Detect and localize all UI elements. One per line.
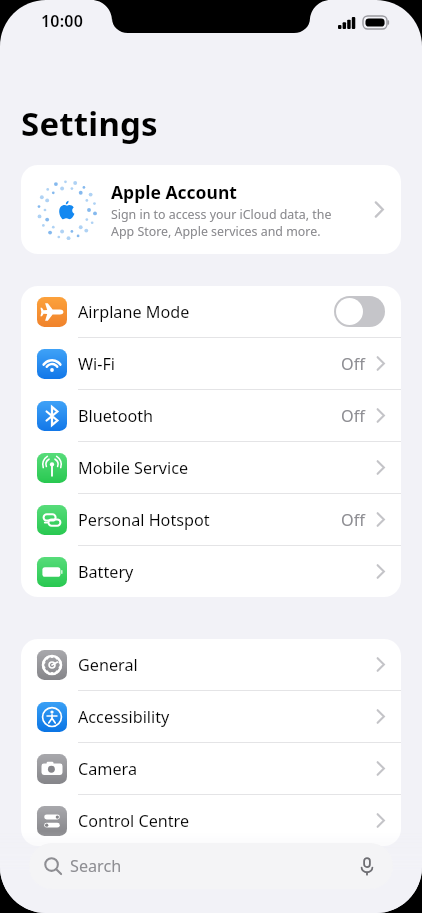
staticText: Personal Hotspot xyxy=(78,509,341,531)
staticText: Wi-Fi xyxy=(78,353,341,375)
staticText: General xyxy=(78,654,376,676)
staticText: Apple Account xyxy=(111,180,237,204)
button[interactable]: General xyxy=(21,639,401,690)
button[interactable]: Camera xyxy=(21,743,401,794)
button[interactable]: Personal Hotspot xyxy=(21,494,401,545)
staticText: Sign in to access your iCloud data, the … xyxy=(111,206,332,239)
staticText: Camera xyxy=(78,758,376,780)
staticText: Off xyxy=(341,509,365,531)
button[interactable]: Voice search xyxy=(356,855,378,877)
staticText: Airplane Mode xyxy=(78,301,334,323)
button[interactable]: Airplane Mode xyxy=(21,286,401,337)
button[interactable]: Battery xyxy=(21,546,401,597)
button[interactable]: Airplane Mode toggle xyxy=(334,296,385,327)
staticText: Battery xyxy=(78,561,376,583)
button[interactable]: Control Centre xyxy=(21,795,401,846)
button[interactable]: Accessibility xyxy=(21,691,401,742)
button[interactable]: Apple Account xyxy=(21,165,401,254)
staticText: Settings xyxy=(21,101,158,146)
button[interactable]: Wi-Fi xyxy=(21,338,401,389)
staticText: 10:00 xyxy=(41,10,84,32)
staticText: Search xyxy=(70,855,356,877)
button[interactable]: Search xyxy=(29,843,393,889)
staticText: Control Centre xyxy=(78,810,376,832)
staticText: Off xyxy=(341,353,365,375)
button[interactable]: Bluetooth xyxy=(21,390,401,441)
button[interactable]: Mobile Service xyxy=(21,442,401,493)
staticText: Mobile Service xyxy=(78,457,376,479)
staticText: Accessibility xyxy=(78,706,376,728)
staticText: Bluetooth xyxy=(78,405,341,427)
staticText: Off xyxy=(341,405,365,427)
